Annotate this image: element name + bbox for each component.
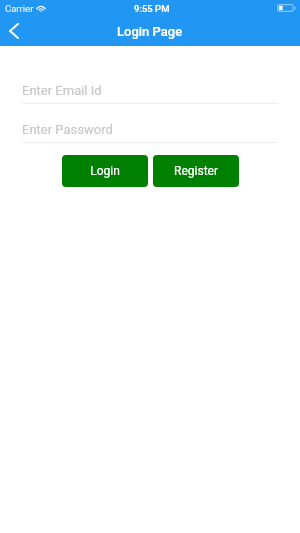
staticText: Login [90,164,120,178]
button[interactable]: Enter Password [22,119,278,143]
staticText: Enter Password [22,122,113,137]
button[interactable]: Back [0,18,28,44]
button[interactable]: Enter Email Id [22,80,278,104]
staticText: 9:55 PM [134,3,170,14]
button[interactable]: Register [153,155,239,187]
other: Battery [277,4,296,12]
staticText: Carrier [5,3,34,14]
other: Wi-Fi signal [36,4,46,11]
staticText: Login Page [117,24,183,39]
staticText: Enter Email Id [22,83,102,98]
staticText: Register [174,164,218,178]
button[interactable]: Login [62,155,148,187]
